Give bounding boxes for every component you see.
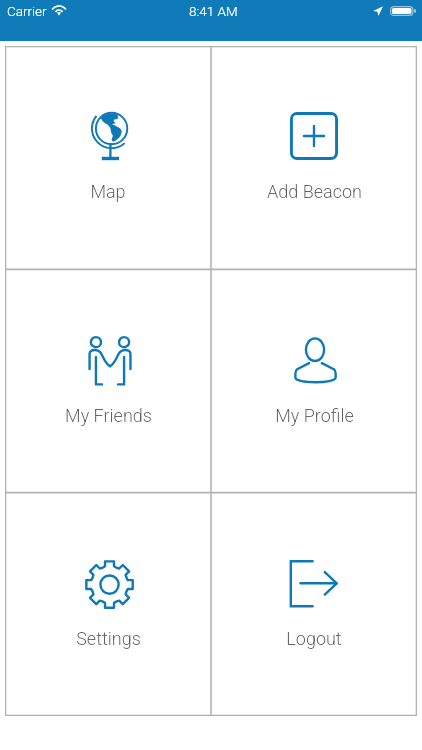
staticText: My Friends — [65, 405, 152, 426]
button[interactable]: Map — [5, 46, 211, 270]
button[interactable]: Settings — [5, 493, 211, 716]
button[interactable]: My Friends — [5, 270, 211, 493]
staticText: Add Beacon — [267, 181, 362, 202]
button[interactable]: Add Beacon — [211, 46, 417, 270]
staticText: Logout — [286, 628, 342, 649]
staticText: Carrier — [7, 3, 47, 19]
staticText: Settings — [76, 628, 141, 649]
button[interactable]: My Profile — [211, 270, 417, 493]
button[interactable]: Logout — [211, 493, 417, 716]
staticText: Map — [90, 181, 126, 202]
staticText: My Profile — [275, 405, 354, 426]
staticText: 8:41 AM — [189, 3, 238, 19]
